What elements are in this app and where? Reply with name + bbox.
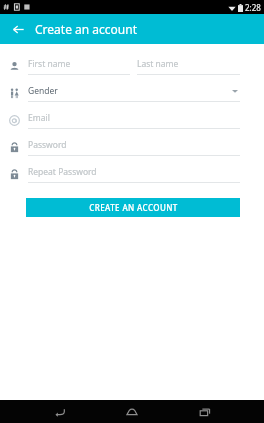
button[interactable]: Back <box>8 19 28 39</box>
staticText: Gender <box>28 85 58 97</box>
staticText: CREATE AN ACCOUNT <box>89 202 178 213</box>
staticText: Last name <box>137 58 179 70</box>
staticText: 2:28 <box>245 2 261 13</box>
staticText: Repeat Password <box>28 166 97 178</box>
staticText: First name <box>28 58 71 70</box>
button[interactable]: Password <box>0 134 264 161</box>
button[interactable]: Gender <box>0 80 264 107</box>
button[interactable]: Email <box>0 107 264 134</box>
button[interactable]: CREATE AN ACCOUNT <box>26 198 240 217</box>
staticText: Password <box>28 139 67 151</box>
button[interactable]: Home <box>119 400 145 423</box>
button[interactable]: Repeat Password <box>0 161 264 188</box>
button[interactable]: Back <box>47 400 73 423</box>
button[interactable]: Recent apps <box>192 400 218 423</box>
staticText: Email <box>28 112 50 124</box>
button[interactable]: First name <box>0 53 264 80</box>
staticText: Create an account <box>35 21 137 37</box>
